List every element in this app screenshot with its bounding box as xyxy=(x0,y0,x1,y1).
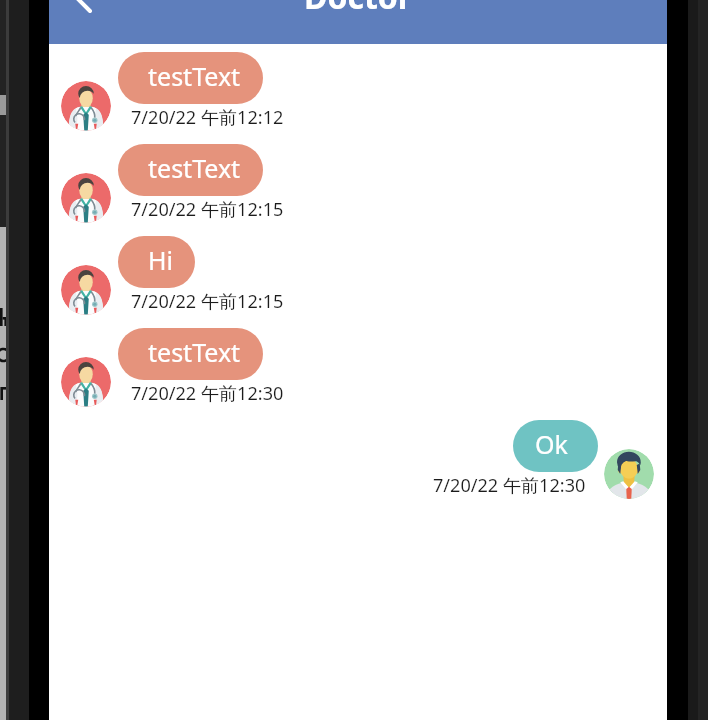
button[interactable]: Doctor avatar xyxy=(61,357,111,407)
staticText: Doctor xyxy=(304,0,413,19)
button[interactable]: My avatar xyxy=(604,449,654,499)
staticText: Ok xyxy=(535,427,568,461)
staticText: testText xyxy=(148,59,241,93)
button[interactable]: testText xyxy=(118,52,263,104)
staticText: testText xyxy=(148,151,241,185)
staticText: 7/20/22 午前12:12 xyxy=(131,105,284,130)
staticText: testText xyxy=(148,335,241,369)
button[interactable]: testText xyxy=(118,328,263,380)
button[interactable]: Back xyxy=(57,0,97,26)
button[interactable]: Hi xyxy=(118,236,195,288)
button[interactable]: Doctor avatar xyxy=(61,81,111,131)
button[interactable]: Doctor avatar xyxy=(61,173,111,223)
button[interactable]: testText xyxy=(118,144,263,196)
staticText: 7/20/22 午前12:15 xyxy=(131,289,284,314)
staticText: 7/20/22 午前12:30 xyxy=(433,473,586,498)
staticText: 7/20/22 午前12:30 xyxy=(131,381,284,406)
button[interactable]: Doctor avatar xyxy=(61,265,111,315)
staticText: 7/20/22 午前12:15 xyxy=(131,197,284,222)
button[interactable]: Ok xyxy=(513,420,598,472)
staticText: Hi xyxy=(148,243,173,277)
